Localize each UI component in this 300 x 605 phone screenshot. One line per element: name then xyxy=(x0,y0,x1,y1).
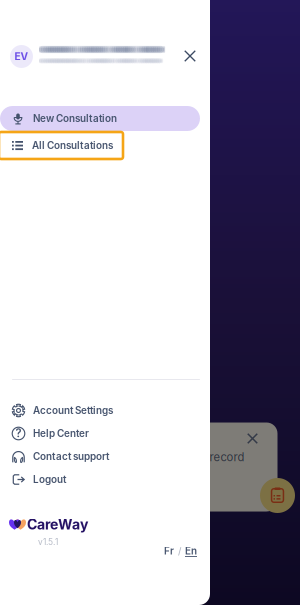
staticText: Contact support xyxy=(33,450,109,462)
staticText: En xyxy=(185,545,197,557)
staticText: ? xyxy=(15,426,21,440)
staticText: All Consultations xyxy=(32,139,113,151)
button[interactable]: ? xyxy=(0,422,200,445)
button[interactable]: Close menu xyxy=(179,45,201,67)
button[interactable]: Fr xyxy=(163,545,175,557)
button[interactable]: New Consultation xyxy=(0,106,200,131)
staticText: New Consultation xyxy=(33,112,117,124)
button[interactable]: Account Settings xyxy=(0,399,200,422)
staticText: Fr xyxy=(164,545,174,557)
staticText: / xyxy=(178,545,181,557)
staticText: EV xyxy=(14,50,28,63)
button[interactable]: En xyxy=(184,545,198,557)
staticText: v1.5.1 xyxy=(38,537,58,547)
button[interactable]: All Consultations xyxy=(0,132,123,159)
staticText: Logout xyxy=(33,473,66,485)
staticText: Help Center xyxy=(33,427,89,439)
staticText: Account Settings xyxy=(33,404,113,416)
button[interactable]: Close tip xyxy=(243,429,261,447)
staticText: CareWay xyxy=(27,516,88,533)
button[interactable]: Logout xyxy=(0,468,200,491)
button[interactable]: Contact support xyxy=(0,445,200,468)
button[interactable]: New record xyxy=(260,478,295,513)
staticText: record xyxy=(209,450,244,464)
